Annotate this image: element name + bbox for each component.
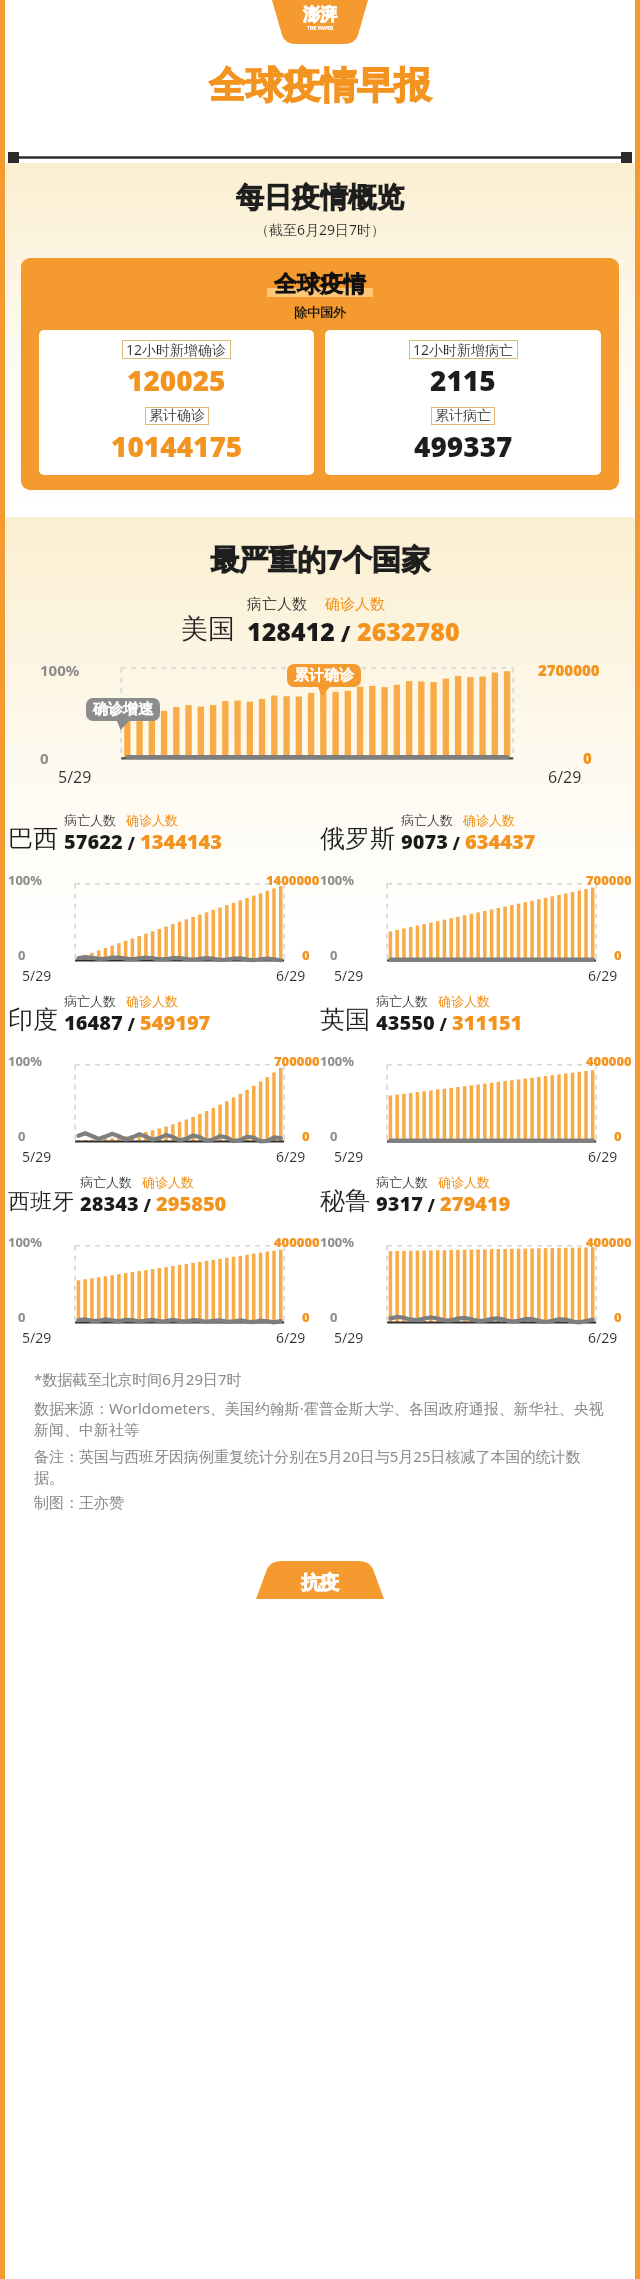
staticText: 5/29 (334, 1147, 364, 1166)
staticText: 5/29 (334, 1328, 364, 1347)
button[interactable]: 英国 (320, 993, 632, 1168)
staticText: 病亡人数 (247, 595, 307, 614)
staticText: 全球疫情 (274, 270, 366, 299)
button[interactable]: 全球疫情 (21, 258, 619, 490)
staticText: 巴西 (8, 823, 58, 854)
staticText: 累计确诊 (294, 666, 354, 685)
staticText: 0 (330, 1308, 338, 1326)
staticText: 确诊人数 (325, 595, 385, 614)
staticText: / (435, 1013, 452, 1036)
staticText: 6/29 (588, 1147, 618, 1166)
staticText: 5/29 (334, 966, 364, 985)
staticText: 400000 (586, 1233, 632, 1251)
staticText: 美国 (181, 612, 235, 646)
staticText: 120025 (127, 361, 226, 399)
staticText: （截至6月29日7时） (0, 220, 640, 239)
staticText: 43550 (376, 1009, 435, 1036)
staticText: 311151 (452, 1009, 523, 1036)
staticText: 100% (8, 1052, 43, 1070)
staticText: 6/29 (588, 966, 618, 985)
button[interactable]: 美国 (0, 595, 640, 648)
staticText: 俄罗斯 (320, 823, 395, 854)
staticText: 英国 (320, 1004, 370, 1035)
button[interactable]: 印度 (8, 993, 320, 1168)
staticText: 1400000 (266, 871, 320, 889)
staticText: / (335, 618, 357, 648)
staticText: 6/29 (276, 1147, 306, 1166)
staticText: 确诊人数 (438, 1174, 490, 1190)
staticText: 279419 (440, 1190, 511, 1217)
staticText: 0 (302, 1127, 310, 1145)
staticText: 确诊增速 (93, 700, 153, 719)
staticText: 2700000 (538, 660, 600, 680)
button[interactable]: 俄罗斯 (320, 812, 632, 987)
staticText: / (123, 832, 140, 855)
staticText: *数据截至北京时间6月29日7时 (34, 1369, 242, 1389)
staticText: 0 (614, 1127, 622, 1145)
staticText: 100% (40, 660, 80, 680)
staticText: 确诊人数 (126, 993, 178, 1009)
staticText: 100% (320, 1233, 355, 1251)
staticText: / (139, 1194, 156, 1217)
staticText: 0 (330, 1127, 338, 1145)
staticText: 100% (320, 871, 355, 889)
staticText: 0 (614, 946, 622, 964)
staticText: 6/29 (588, 1328, 618, 1347)
staticText: 累计确诊 (149, 407, 205, 425)
staticText: 确诊人数 (126, 812, 178, 828)
button[interactable]: The Paper logo (272, 0, 368, 44)
staticText: 抗疫 (301, 1571, 339, 1595)
staticText: 印度 (8, 1004, 58, 1035)
staticText: 6/29 (276, 966, 306, 985)
staticText: 每日疫情概览 (0, 180, 640, 215)
staticText: 确诊人数 (438, 993, 490, 1009)
staticText: 400000 (586, 1052, 632, 1070)
staticText: 549197 (140, 1009, 211, 1036)
staticText: 2632780 (357, 614, 460, 648)
button[interactable]: 12小时新增病亡 (325, 330, 601, 475)
staticText: 确诊人数 (463, 812, 515, 828)
staticText: 0 (18, 1127, 26, 1145)
button[interactable]: 抗疫 (256, 1561, 384, 1599)
staticText: 秘鲁 (320, 1185, 370, 1216)
staticText: 700000 (586, 871, 632, 889)
staticText: 全球疫情早报 (0, 62, 640, 109)
staticText: 9073 (401, 828, 448, 855)
staticText: 6/29 (276, 1328, 306, 1347)
staticText: 57622 (64, 828, 123, 855)
staticText: 数据来源：Worldometers、美国约翰斯·霍普金斯大学、各国政府通报、新华… (34, 1398, 610, 1439)
staticText: 0 (583, 748, 592, 768)
staticText: 确诊人数 (142, 1174, 194, 1190)
staticText: 除中国外 (39, 304, 601, 320)
staticText: 400000 (274, 1233, 320, 1251)
staticText: 病亡人数 (401, 812, 453, 828)
staticText: 10144175 (111, 427, 243, 465)
button[interactable]: 巴西 (8, 812, 320, 987)
staticText: 6/29 (548, 766, 582, 788)
staticText: 5/29 (22, 1328, 52, 1347)
staticText: 备注：英国与西班牙因病例重复统计分别在5月20日与5月25日核减了本国的统计数据… (34, 1446, 610, 1487)
staticText: 499337 (414, 427, 513, 465)
staticText: 100% (320, 1052, 355, 1070)
staticText: / (123, 1013, 140, 1036)
staticText: 5/29 (22, 1147, 52, 1166)
staticText: 1344143 (140, 828, 223, 855)
staticText: 病亡人数 (64, 993, 116, 1009)
staticText: 病亡人数 (64, 812, 116, 828)
staticText: 0 (18, 946, 26, 964)
staticText: / (423, 1194, 440, 1217)
button[interactable]: 西班牙 (8, 1174, 320, 1349)
staticText: / (448, 832, 465, 855)
staticText: 澎湃 (303, 4, 337, 25)
staticText: 16487 (64, 1009, 123, 1036)
staticText: 制图：王亦赞 (34, 1494, 124, 1513)
staticText: 0 (302, 1308, 310, 1326)
button[interactable]: 12小时新增确诊 (39, 330, 314, 475)
button[interactable]: 秘鲁 (320, 1174, 632, 1349)
staticText: 病亡人数 (80, 1174, 132, 1190)
staticText: 12小时新增病亡 (413, 340, 514, 359)
staticText: 28343 (80, 1190, 139, 1217)
staticText: 0 (18, 1308, 26, 1326)
staticText: 0 (40, 748, 49, 768)
staticText: 0 (330, 946, 338, 964)
